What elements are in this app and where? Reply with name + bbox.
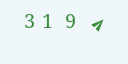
staticText: 1	[42, 7, 54, 34]
button[interactable]: Send	[92, 17, 108, 32]
staticText: 3	[24, 7, 36, 34]
staticText: 9	[65, 7, 77, 34]
